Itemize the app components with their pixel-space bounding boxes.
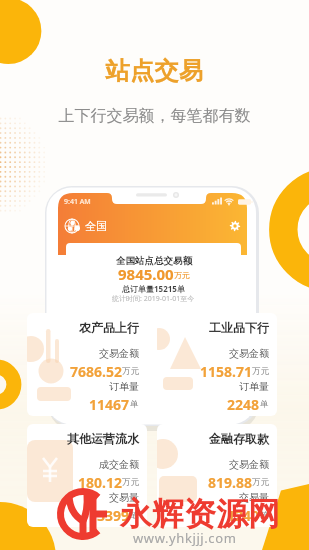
button[interactable]: 全国站点总交易额: [66, 243, 241, 307]
button[interactable]: 设置: [228, 219, 242, 233]
staticText: 9:41 AM: [64, 197, 91, 207]
staticText: 11467: [89, 395, 130, 411]
button[interactable]: 全国: [64, 217, 128, 235]
staticText: 永辉资源网: [120, 494, 280, 534]
button[interactable]: 农产品上行: [27, 313, 147, 416]
staticText: 万元: [252, 477, 269, 488]
staticText: 交易量: [109, 491, 139, 503]
staticText: 交易金额: [229, 458, 269, 470]
staticText: 819.88: [208, 473, 252, 489]
staticText: 订单量: [239, 380, 269, 392]
staticText: 万元: [122, 477, 139, 488]
staticText: 全国: [85, 219, 107, 233]
button[interactable]: 其他运营流水: [27, 424, 147, 527]
staticText: 笔: [260, 510, 269, 521]
staticText: 9845.00: [118, 264, 174, 281]
staticText: 总订单量15215单: [122, 283, 185, 294]
button[interactable]: 金融存取款: [157, 424, 277, 527]
staticText: 订单量: [109, 380, 139, 392]
staticText: 交易金额: [99, 347, 139, 359]
staticText: 笔: [130, 510, 139, 521]
staticText: 1240: [227, 506, 260, 522]
staticText: 3399: [97, 506, 130, 522]
staticText: 成交金额: [99, 458, 139, 470]
staticText: 万元: [252, 366, 269, 377]
staticText: 上下行交易额，每笔都有数: [0, 106, 309, 126]
staticText: 统计时间: 2019-01-01至今: [112, 294, 195, 304]
staticText: 万元: [122, 366, 139, 377]
staticText: 7686.52: [70, 362, 122, 378]
staticText: 其他运营流水: [67, 431, 139, 446]
staticText: 1158.71: [200, 362, 252, 378]
staticText: 金融存取款: [209, 431, 269, 446]
staticText: 单: [260, 399, 269, 410]
staticText: 180.12: [78, 473, 122, 489]
staticText: 站点交易: [0, 56, 309, 86]
staticText: www.yhkjjj.com: [133, 529, 237, 547]
staticText: 农产品上行: [79, 320, 139, 335]
staticText: 工业品下行: [209, 320, 269, 335]
staticText: 万元: [174, 270, 190, 280]
staticText: 单: [130, 399, 139, 410]
staticText: 交易金额: [229, 347, 269, 359]
button[interactable]: 工业品下行: [157, 313, 277, 416]
staticText: 2248: [227, 395, 260, 411]
staticText: 全国站点总交易额: [116, 255, 192, 267]
staticText: 交易量: [239, 491, 269, 503]
